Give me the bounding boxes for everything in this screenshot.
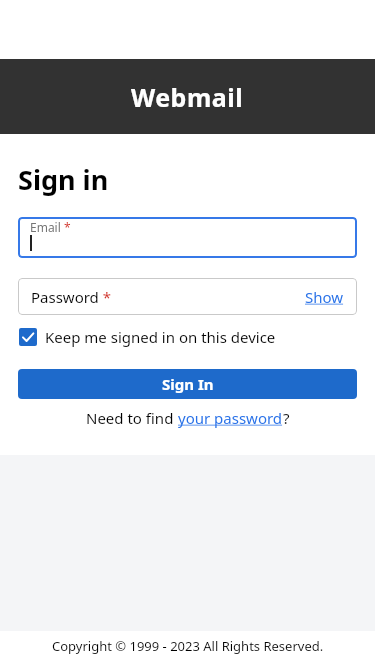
button[interactable]: Keep me signed in on this device — [18, 327, 276, 347]
button[interactable]: Password * — [18, 278, 357, 315]
staticText: Keep me signed in on this device — [45, 327, 276, 347]
staticText: Sign In — [162, 374, 214, 394]
staticText: ? — [283, 408, 290, 428]
staticText: Email * — [30, 219, 71, 235]
staticText: Need to find — [86, 408, 178, 428]
staticText: Password * — [31, 287, 112, 307]
staticText: Webmail — [131, 80, 244, 114]
staticText: Copyright © 1999 - 2023 All Rights Reser… — [52, 637, 324, 655]
button[interactable]: your password — [178, 408, 283, 428]
button[interactable]: Email * — [18, 217, 357, 258]
button[interactable]: Show — [305, 287, 344, 307]
button[interactable]: Sign In — [18, 369, 357, 399]
staticText: Sign in — [18, 161, 109, 198]
